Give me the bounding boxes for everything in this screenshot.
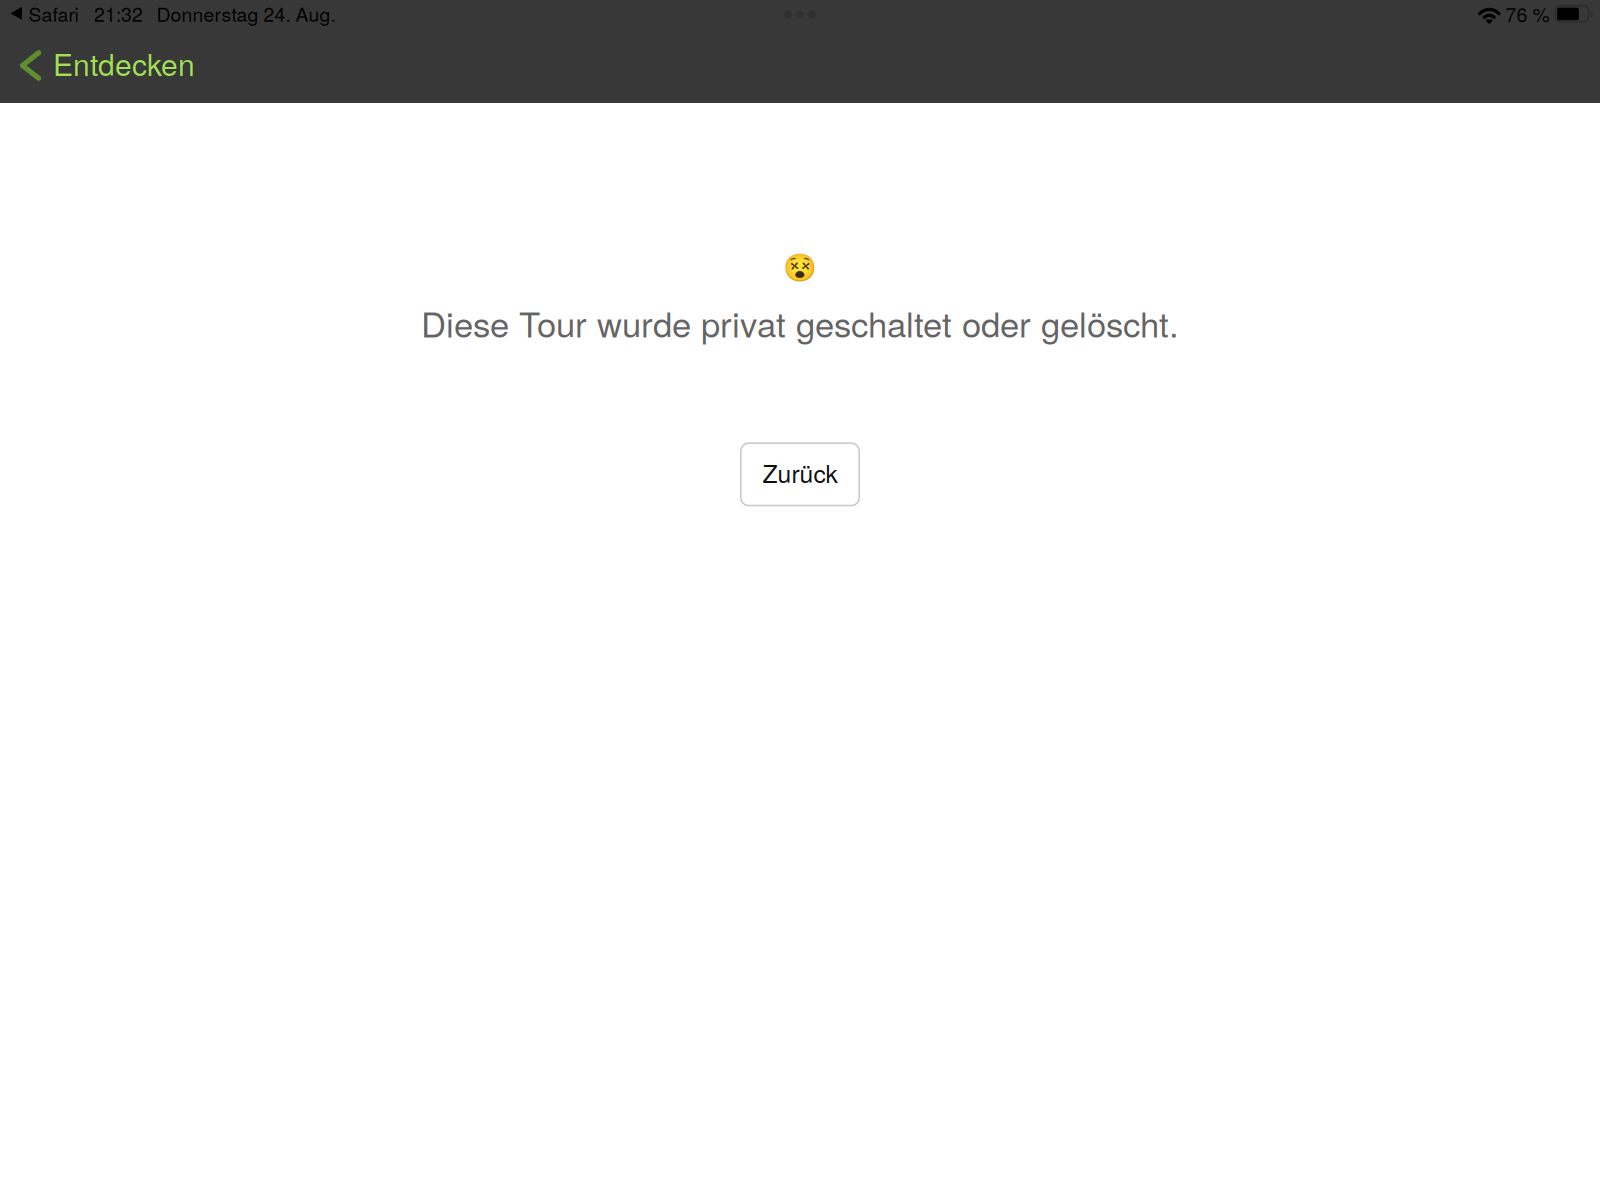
staticText: Zurück — [762, 455, 837, 490]
button[interactable]: Zurück — [740, 442, 860, 506]
staticText: Safari — [28, 0, 78, 27]
staticText: Diese Tour wurde privat geschaltet oder … — [421, 298, 1179, 347]
staticText: 76 % — [1505, 0, 1549, 28]
staticText: Donnerstag 24. Aug. — [156, 0, 335, 27]
button[interactable]: Entdecken — [0, 32, 211, 103]
staticText: 21:32 — [94, 0, 143, 27]
button[interactable]: Safari — [10, 1, 78, 25]
staticText: 😵 — [783, 252, 817, 284]
staticText: Entdecken — [53, 41, 195, 84]
